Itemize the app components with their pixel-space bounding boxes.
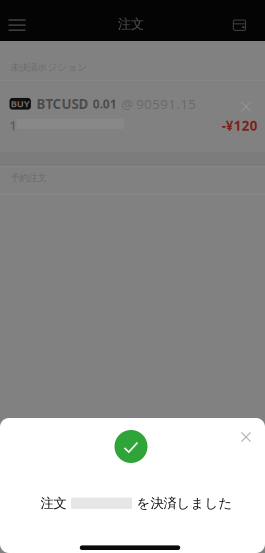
- staticText: BUY: [11, 98, 30, 110]
- staticText: 1: [10, 118, 17, 133]
- button[interactable]: Menu: [8, 0, 42, 41]
- button[interactable]: Wallet: [212, 0, 246, 41]
- staticText: -¥120: [222, 117, 258, 134]
- button[interactable]: Close: [232, 423, 260, 451]
- staticText: BTCUSD: [36, 95, 88, 113]
- button[interactable]: BUY: [0, 81, 265, 151]
- staticText: 注文: [41, 495, 67, 511]
- staticText: を決済しました: [136, 495, 232, 511]
- staticText: 注文: [118, 16, 144, 32]
- staticText: @ 90591.15: [121, 95, 196, 113]
- staticText: 0.01: [93, 96, 117, 112]
- staticText: 予約注文: [10, 172, 46, 184]
- staticText: 未決済ポジション: [11, 62, 88, 73]
